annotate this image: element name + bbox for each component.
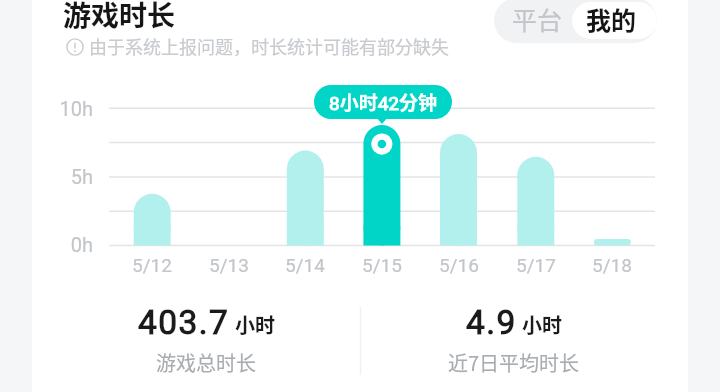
staticText: 5/12 (132, 254, 172, 276)
staticText: 我的 (586, 2, 637, 37)
staticText: 5h (70, 165, 93, 188)
staticText: 5/14 (285, 254, 325, 276)
staticText: 由于系统上报问题，时长统计可能有部分缺失 (89, 33, 449, 59)
button[interactable]: 8小时42分钟 (314, 85, 452, 119)
staticText: 近7日平均时长 (448, 348, 580, 377)
button[interactable]: 4.9 (351, 303, 677, 377)
staticText: 5/17 (516, 254, 556, 276)
staticText: 小时 (522, 310, 562, 339)
staticText: 小时 (235, 310, 275, 339)
other: Info (66, 38, 84, 56)
button[interactable]: 403.7 (43, 303, 369, 377)
staticText: 0h (70, 233, 93, 256)
staticText: 4.9 (466, 303, 517, 342)
staticText: 平台 (512, 1, 563, 37)
staticText: 5/15 (362, 254, 402, 276)
staticText: 10h (59, 97, 93, 120)
staticText: 游戏总时长 (156, 348, 256, 377)
staticText: 游戏时长 (63, 0, 176, 35)
button[interactable]: 我的 (572, 2, 657, 39)
staticText: 8小时42分钟 (329, 88, 438, 116)
staticText: 5/16 (439, 254, 479, 276)
staticText: 5/18 (592, 254, 632, 276)
button[interactable]: 平台 (494, 0, 572, 43)
staticText: 5/13 (209, 254, 249, 276)
staticText: 403.7 (138, 303, 230, 342)
